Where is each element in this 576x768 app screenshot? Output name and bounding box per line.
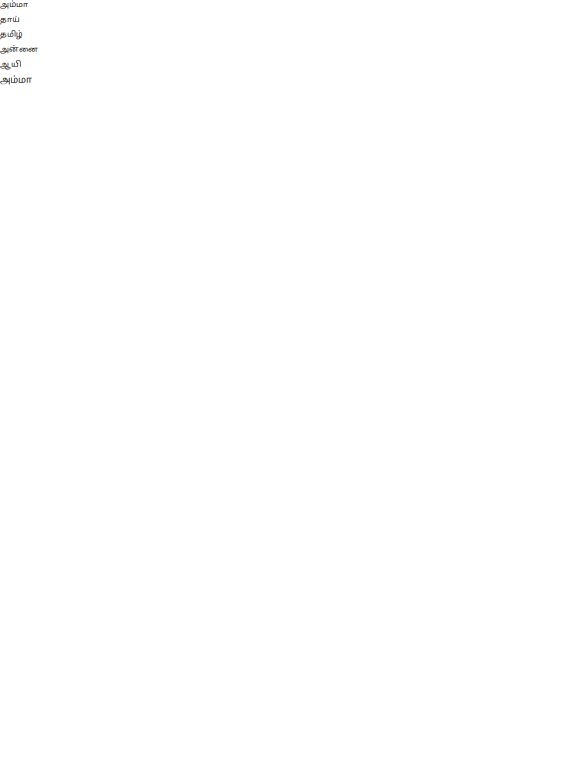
staticText: அன்னை bbox=[0, 45, 38, 55]
staticText: அம்மா bbox=[0, 0, 28, 10]
staticText: ஆயி bbox=[0, 60, 21, 70]
staticText: தாய் bbox=[0, 15, 20, 25]
staticText: தமிழ் bbox=[0, 30, 23, 40]
staticText: அம்மா bbox=[0, 75, 32, 86]
